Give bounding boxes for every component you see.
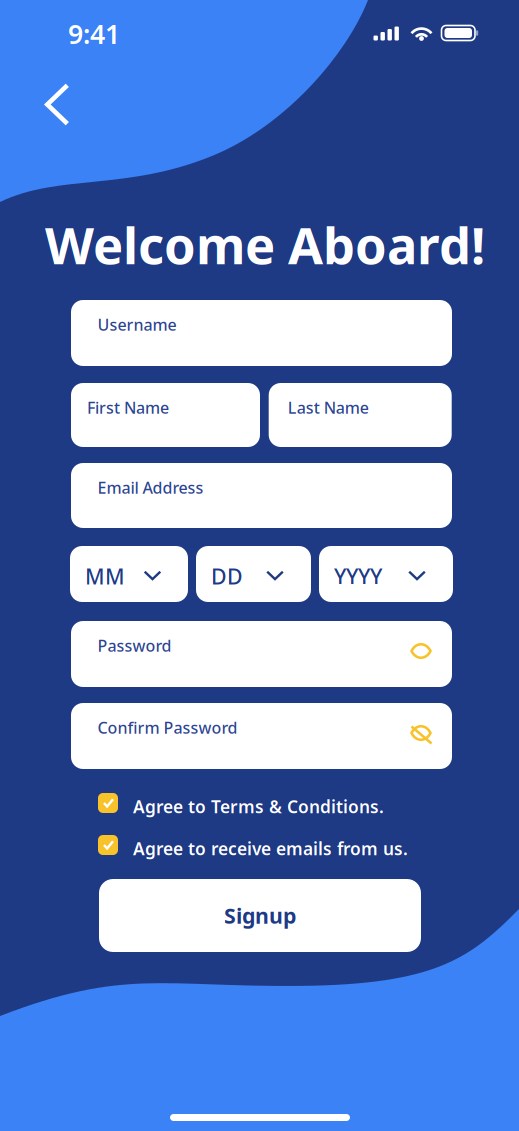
- button[interactable]: Confirm Password: [71, 703, 452, 769]
- staticText: YYYY: [334, 562, 382, 590]
- button[interactable]: Email Address: [71, 463, 452, 528]
- button[interactable]: Back: [33, 71, 82, 138]
- staticText: Signup: [224, 901, 296, 930]
- button[interactable]: Signup: [99, 879, 421, 952]
- staticText: First Name: [87, 397, 169, 418]
- staticText: Confirm Password: [97, 717, 237, 738]
- staticText: DD: [211, 562, 243, 590]
- staticText: Agree to receive emails from us.: [133, 837, 408, 860]
- button[interactable]: YYYY: [319, 546, 453, 602]
- staticText: Username: [97, 314, 176, 335]
- button[interactable]: Password: [71, 621, 452, 687]
- button[interactable]: Agree to Terms & Conditions.: [71, 793, 411, 813]
- button[interactable]: Last Name: [269, 383, 452, 447]
- staticText: 9:41: [68, 16, 120, 51]
- staticText: MM: [85, 562, 125, 590]
- button[interactable]: MM: [70, 546, 188, 602]
- staticText: Last Name: [288, 397, 369, 418]
- staticText: Password: [97, 635, 171, 656]
- staticText: Welcome Aboard!: [45, 211, 485, 278]
- staticText: Email Address: [97, 477, 203, 498]
- staticText: Agree to Terms & Conditions.: [133, 795, 384, 818]
- button[interactable]: Agree to receive emails from us.: [71, 835, 411, 855]
- button[interactable]: Username: [71, 300, 452, 366]
- button[interactable]: First Name: [71, 383, 260, 447]
- button[interactable]: DD: [196, 546, 311, 602]
